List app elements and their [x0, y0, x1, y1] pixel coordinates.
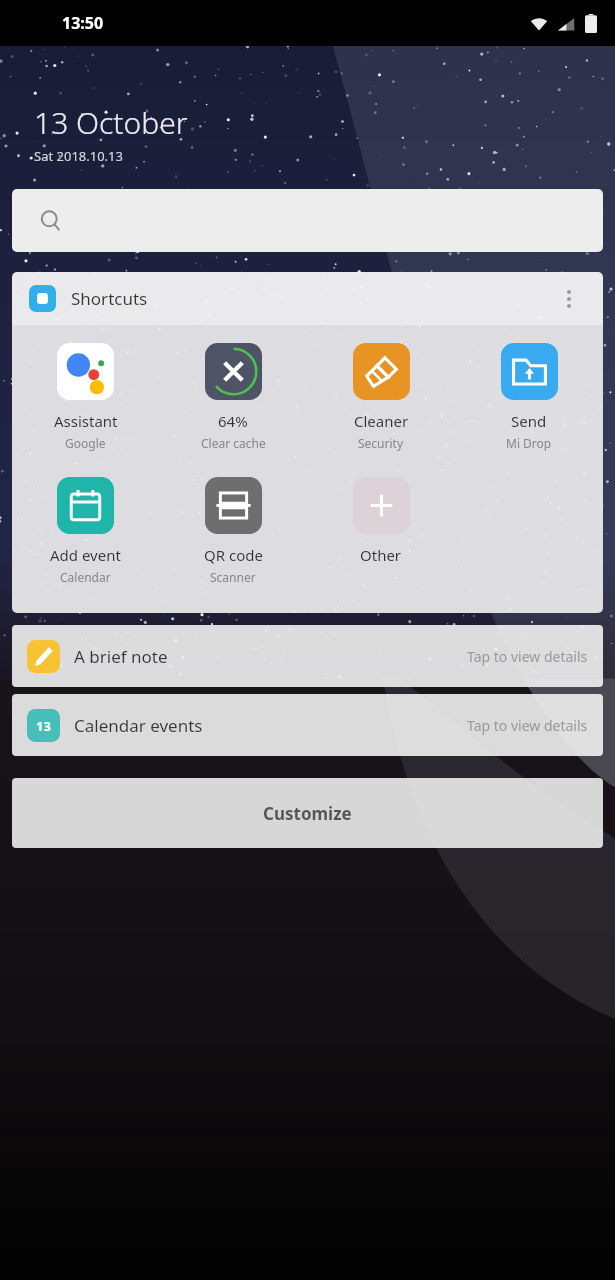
- staticText: Other: [360, 545, 402, 565]
- button[interactable]: Search: [12, 189, 603, 252]
- staticText: Calendar: [60, 569, 111, 585]
- button[interactable]: Shortcuts: [12, 272, 603, 325]
- button[interactable]: Other: [307, 475, 455, 567]
- button[interactable]: Send: [455, 341, 603, 453]
- staticText: Scanner: [210, 569, 256, 585]
- staticText: Add event: [50, 545, 121, 565]
- staticText: 13: [36, 717, 51, 735]
- staticText: Clear cache: [201, 435, 266, 451]
- button[interactable]: 64%: [159, 341, 307, 453]
- button[interactable]: Cleaner: [307, 341, 455, 453]
- staticText: Mi Drop: [506, 435, 552, 451]
- staticText: QR code: [204, 545, 263, 565]
- button[interactable]: A brief note: [12, 625, 603, 687]
- button[interactable]: 13: [12, 694, 603, 756]
- staticText: 64%: [218, 411, 248, 431]
- staticText: Calendar events: [74, 714, 203, 737]
- button[interactable]: Add event: [12, 475, 159, 587]
- button[interactable]: Customize: [12, 778, 603, 848]
- staticText: A brief note: [74, 645, 168, 668]
- staticText: Cleaner: [354, 411, 409, 431]
- button[interactable]: Assistant: [12, 341, 159, 453]
- button[interactable]: More options: [552, 282, 586, 316]
- staticText: Google: [65, 435, 106, 451]
- staticText: Tap to view details: [467, 716, 588, 735]
- staticText: Send: [511, 411, 547, 431]
- staticText: Sat 2018.10.13: [34, 147, 123, 165]
- staticText: Security: [358, 435, 404, 451]
- staticText: Shortcuts: [71, 287, 148, 310]
- staticText: Assistant: [54, 411, 118, 431]
- staticText: Customize: [263, 802, 352, 825]
- staticText: Tap to view details: [467, 647, 588, 666]
- staticText: 13 October: [34, 102, 188, 143]
- button[interactable]: QR code: [159, 475, 307, 587]
- staticText: 13:50: [62, 12, 104, 34]
